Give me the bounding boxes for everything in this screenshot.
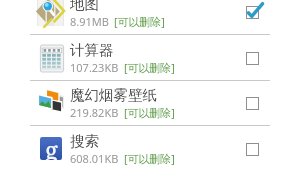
staticText: 搜索: [70, 132, 99, 150]
staticText: 608.01KB: [70, 151, 119, 166]
staticText: 地图: [70, 0, 99, 13]
staticText: [可以删除]: [124, 151, 175, 166]
button[interactable]: Select app: [246, 52, 263, 69]
staticText: g: [45, 133, 58, 160]
button[interactable]: 魔幻烟雾壁纸: [0, 80, 300, 126]
staticText: 8.91MB: [70, 14, 109, 29]
staticText: [可以删除]: [124, 60, 175, 75]
staticText: 107.23KB: [70, 60, 119, 75]
staticText: 计算器: [70, 41, 114, 59]
staticText: 219.82KB: [70, 105, 119, 120]
button[interactable]: Select app: [246, 143, 263, 160]
staticText: [可以删除]: [114, 14, 165, 29]
button[interactable]: 地图: [0, 0, 300, 35]
staticText: 魔幻烟雾壁纸: [70, 86, 157, 104]
button[interactable]: g: [0, 126, 300, 170]
staticText: [可以删除]: [124, 105, 175, 120]
button[interactable]: 计算器: [0, 35, 300, 81]
button[interactable]: Select app: [246, 97, 263, 114]
button[interactable]: Select app: [246, 6, 263, 23]
